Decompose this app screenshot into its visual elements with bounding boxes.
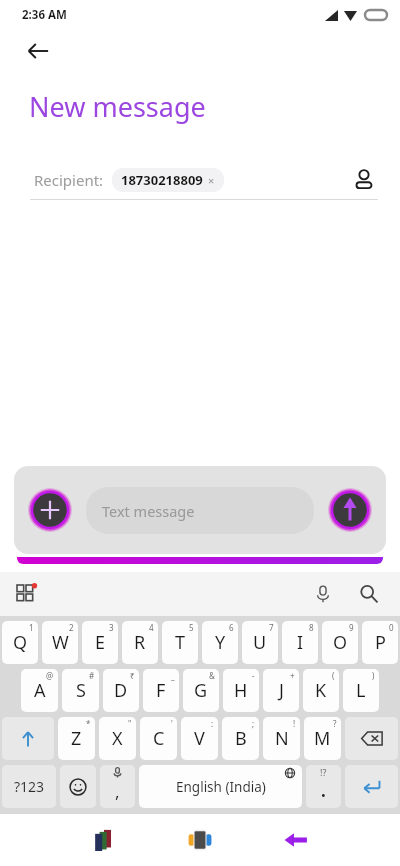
button[interactable]: U [242,621,278,664]
staticText: New message [29,88,206,125]
button[interactable]: Back [16,30,60,72]
staticText: L [356,678,366,703]
staticText: 1 [29,622,34,633]
button[interactable]: Search [352,577,386,611]
button[interactable]: T [162,621,198,664]
staticText: Y [215,630,226,655]
staticText: K [315,678,327,703]
button[interactable]: S [62,669,99,712]
staticText: 0 [389,622,394,633]
staticText: S [76,678,86,703]
staticText: _ [171,670,175,681]
staticText: " [128,718,132,729]
staticText: × [208,173,215,188]
button[interactable]: Q [2,621,38,664]
button[interactable]: C [140,717,177,760]
staticText: , [115,780,120,803]
staticText: 9 [349,622,354,633]
staticText: 18730218809 [121,171,203,189]
button[interactable]: M [304,717,341,760]
button[interactable]: Text message [86,487,314,534]
staticText: W [52,630,69,655]
button[interactable]: Home [178,818,222,862]
button[interactable]: L [343,669,379,712]
staticText: V [194,726,205,751]
button[interactable]: E [82,621,118,664]
staticText: ₹ [130,670,135,681]
staticText: !? [320,766,327,778]
button[interactable]: W [42,621,78,664]
staticText: - [252,670,255,681]
button[interactable]: Send [328,488,372,532]
staticText: M [314,726,331,751]
staticText: + [290,670,295,681]
staticText: C [153,726,165,751]
button[interactable]: P [362,621,398,664]
staticText: ' [171,718,173,729]
button[interactable]: O [322,621,358,664]
button[interactable]: Backspace [345,717,398,760]
button[interactable]: Y [202,621,238,664]
button[interactable]: Recents [82,818,126,862]
staticText: ! [293,718,296,729]
staticText: G [194,678,208,703]
button[interactable]: H [223,669,259,712]
staticText: & [209,670,215,681]
staticText: 2 [69,622,74,633]
staticText: U [253,630,267,655]
button[interactable]: English (India) [139,765,302,808]
staticText: Q [13,630,28,655]
button[interactable]: Add attachment [28,488,72,532]
button[interactable]: Z [58,717,95,760]
button[interactable]: Enter [345,765,398,808]
button[interactable]: Voice input [306,577,340,611]
staticText: 4 [149,622,154,633]
staticText: ) [372,670,375,681]
button[interactable]: F [143,669,179,712]
button[interactable]: K [303,669,339,712]
button[interactable]: B [222,717,259,760]
button[interactable]: Choose contact [344,161,384,199]
staticText: @ [46,670,54,681]
button[interactable]: I [282,621,318,664]
button[interactable]: ?123 [2,765,56,808]
staticText: # [89,670,95,681]
staticText: 6 [229,622,234,633]
button[interactable]: Shift [2,717,54,760]
staticText: * [86,718,91,729]
staticText: D [114,678,128,703]
button[interactable]: 18730218809 [112,168,224,192]
button[interactable]: R [122,621,158,664]
staticText: Recipient: [34,170,104,190]
button[interactable]: D [103,669,139,712]
staticText: O [333,630,348,655]
button[interactable]: J [263,669,299,712]
button[interactable]: . [306,765,341,808]
button[interactable]: Emoji [60,765,96,808]
staticText: English (India) [176,778,266,796]
staticText: Text message [102,501,195,521]
staticText: 2:36 AM [22,7,67,23]
staticText: P [375,630,386,655]
button[interactable]: , [100,765,135,808]
staticText: ?123 [14,777,45,796]
staticText: ? [333,718,337,729]
staticText: Z [71,726,82,751]
button[interactable]: X [99,717,136,760]
staticText: H [234,678,248,703]
button[interactable]: Toolbox [8,576,44,612]
staticText: F [156,678,166,703]
button[interactable]: N [263,717,300,760]
staticText: J [279,678,284,703]
button[interactable]: A [21,669,58,712]
staticText: 3 [109,622,114,633]
staticText: R [134,630,146,655]
staticText: : [211,718,214,729]
staticText: ( [332,670,335,681]
staticText: ; [252,718,255,729]
staticText: E [95,630,106,655]
button[interactable]: V [181,717,218,760]
staticText: I [297,630,304,655]
button[interactable]: G [183,669,219,712]
button[interactable]: Back [274,818,318,862]
